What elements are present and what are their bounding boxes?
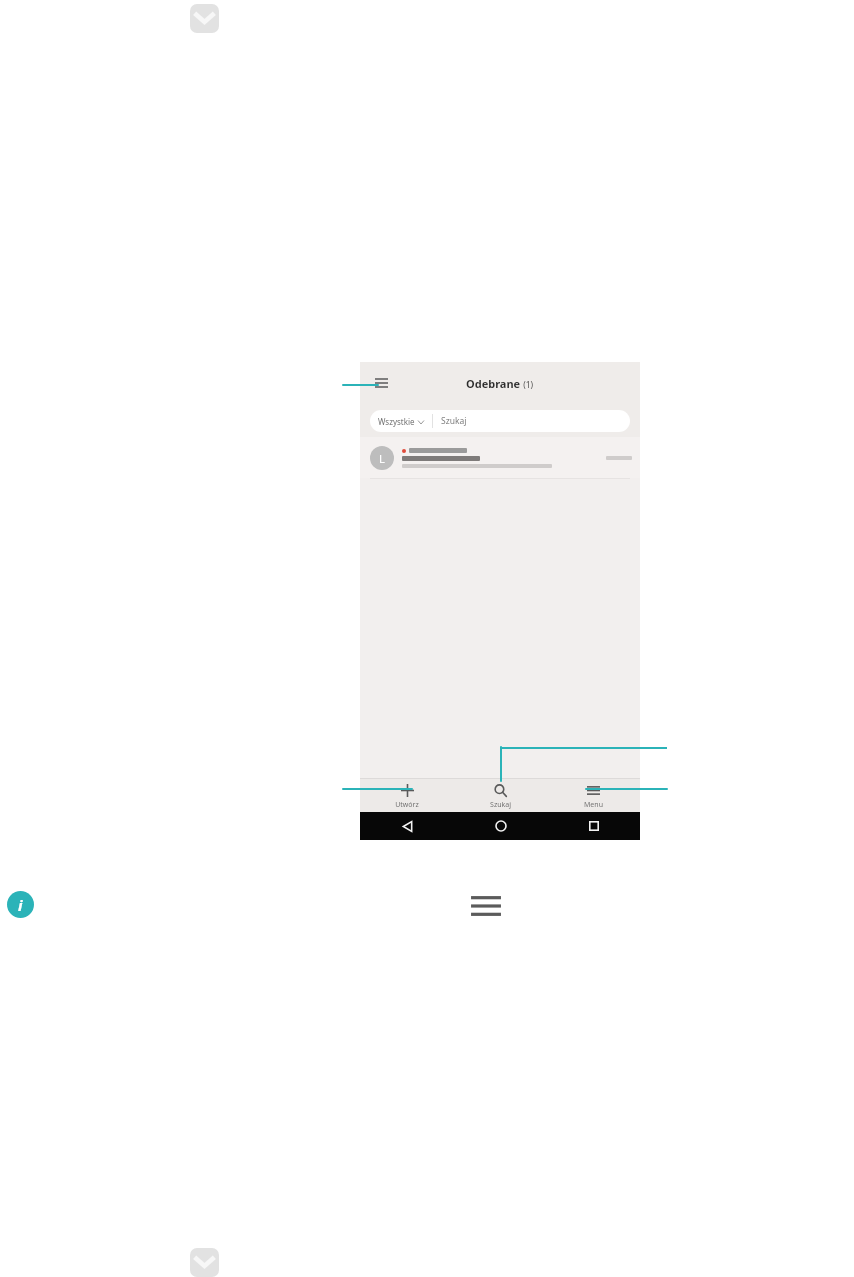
staticText: Menu [584, 800, 603, 810]
staticText: Szukaj [490, 800, 511, 810]
button[interactable]: Wszystkie [370, 416, 432, 427]
other: Home [495, 820, 507, 832]
button[interactable]: Szukaj [433, 415, 630, 427]
staticText: Szukaj [441, 415, 467, 427]
staticText: (1) [521, 379, 534, 391]
staticText: Utwórz [395, 800, 419, 810]
button[interactable]: Szukaj [454, 779, 547, 810]
staticText: Odebrane [466, 376, 521, 391]
button[interactable]: Utwórz [360, 779, 454, 810]
staticText: i [18, 895, 23, 915]
other: Recents [589, 821, 599, 831]
staticText: L [379, 451, 385, 466]
button[interactable]: Menu [547, 779, 640, 810]
staticText: Wszystkie [378, 416, 415, 427]
button[interactable]: Menu [368, 370, 394, 396]
other: Back [402, 821, 413, 832]
other: Info [7, 891, 34, 918]
button[interactable]: L [360, 437, 640, 478]
